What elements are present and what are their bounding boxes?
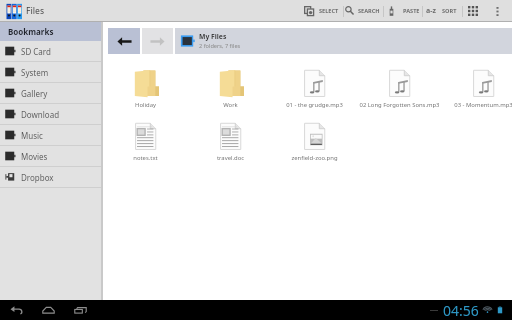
staticText: My Files	[199, 32, 227, 41]
staticText: Work	[188, 101, 273, 109]
button[interactable]: notes.txt	[103, 116, 188, 169]
staticText: Gallery	[21, 88, 48, 99]
button[interactable]: Recent apps	[71, 301, 89, 319]
button[interactable]: More options	[482, 0, 512, 22]
staticText: Dropbox	[21, 172, 54, 183]
button[interactable]: My Files	[175, 28, 512, 54]
button[interactable]: 03 - Momentum.mp3	[441, 63, 512, 116]
button[interactable]: zenfield-zoo.png	[272, 116, 357, 169]
staticText: Download	[21, 109, 60, 120]
staticText: System	[21, 67, 49, 78]
button[interactable]: Dropbox	[0, 167, 101, 187]
staticText: Bookmarks	[8, 26, 54, 37]
button[interactable]: Download	[0, 104, 101, 124]
button[interactable]: SD Card	[0, 41, 101, 61]
button[interactable]: Music	[0, 125, 101, 145]
button[interactable]: Back	[7, 301, 25, 319]
button[interactable]: Holiday	[103, 63, 188, 116]
staticText: SD Card	[21, 46, 51, 57]
button[interactable]: Forward	[142, 28, 173, 54]
button[interactable]: Grid view	[463, 0, 482, 22]
staticText: travel.doc	[188, 154, 273, 162]
staticText: 02 Long Forgotten Sons.mp3	[357, 101, 442, 109]
button[interactable]: Gallery	[0, 83, 101, 103]
button[interactable]: 01 - the grudge.mp3	[272, 63, 357, 116]
button[interactable]: SELECT	[304, 0, 343, 22]
button[interactable]: Movies	[0, 146, 101, 166]
staticText: PASTE	[403, 7, 420, 15]
button[interactable]: Back	[108, 28, 140, 54]
staticText: a-z	[426, 6, 436, 16]
button[interactable]: Work	[188, 63, 273, 116]
staticText: SORT	[442, 7, 457, 15]
button[interactable]: PASTE	[384, 0, 422, 22]
button[interactable]: System	[0, 62, 101, 82]
button[interactable]: 02 Long Forgotten Sons.mp3	[357, 63, 442, 116]
staticText: SELECT	[319, 7, 339, 15]
staticText: Music	[21, 130, 43, 141]
button[interactable]: a-z	[423, 0, 462, 22]
button[interactable]: Home	[39, 301, 57, 319]
staticText: 04:56	[443, 301, 479, 320]
staticText: Holiday	[103, 101, 188, 109]
staticText: zenfield-zoo.png	[272, 154, 357, 162]
staticText: SEARCH	[358, 7, 380, 15]
staticText: Movies	[21, 151, 48, 162]
staticText: 2 folders, 7 files	[199, 42, 241, 50]
button[interactable]: travel.doc	[188, 116, 273, 169]
staticText: 01 - the grudge.mp3	[272, 101, 357, 109]
staticText: 03 - Momentum.mp3	[441, 101, 512, 109]
button[interactable]: SEARCH	[344, 0, 383, 22]
staticText: Files	[26, 5, 45, 17]
staticText: notes.txt	[103, 154, 188, 162]
